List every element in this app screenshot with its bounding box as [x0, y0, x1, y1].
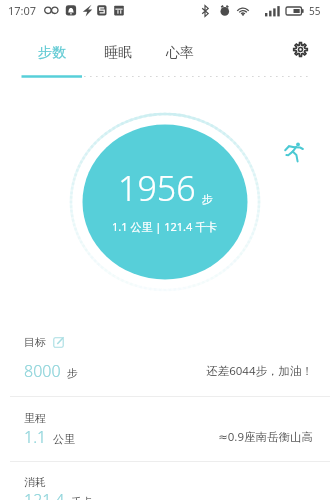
- staticText: 步: [202, 192, 213, 206]
- staticText: 17:07: [8, 3, 37, 18]
- staticText: 千卡: [71, 495, 93, 500]
- staticText: 睡眠: [104, 44, 132, 62]
- staticText: 公里: [53, 432, 75, 446]
- button[interactable]: 消耗: [0, 461, 330, 500]
- staticText: 8000: [24, 360, 61, 382]
- staticText: 里程: [24, 411, 46, 425]
- button[interactable]: 睡眠: [88, 36, 148, 70]
- staticText: 步: [67, 366, 78, 380]
- staticText: 1.1 公里 | 121.4 千卡: [112, 219, 218, 234]
- staticText: 心率: [166, 44, 194, 62]
- staticText: 1.1: [24, 426, 47, 448]
- staticText: 55: [309, 4, 321, 18]
- button[interactable]: 里程: [0, 396, 330, 461]
- staticText: 消耗: [24, 475, 46, 489]
- button[interactable]: 心率: [150, 36, 210, 70]
- other: Running: [283, 140, 309, 166]
- staticText: 步数: [38, 44, 66, 62]
- staticText: ≈0.9座南岳衡山高: [218, 429, 313, 445]
- staticText: 1956: [118, 165, 196, 211]
- button[interactable]: 步数: [22, 36, 82, 70]
- staticText: 121.4: [24, 489, 65, 500]
- staticText: 目标: [24, 335, 46, 349]
- button[interactable]: Settings: [284, 33, 316, 65]
- staticText: 还差6044步，加油！: [206, 363, 313, 379]
- button[interactable]: 目标: [0, 331, 330, 396]
